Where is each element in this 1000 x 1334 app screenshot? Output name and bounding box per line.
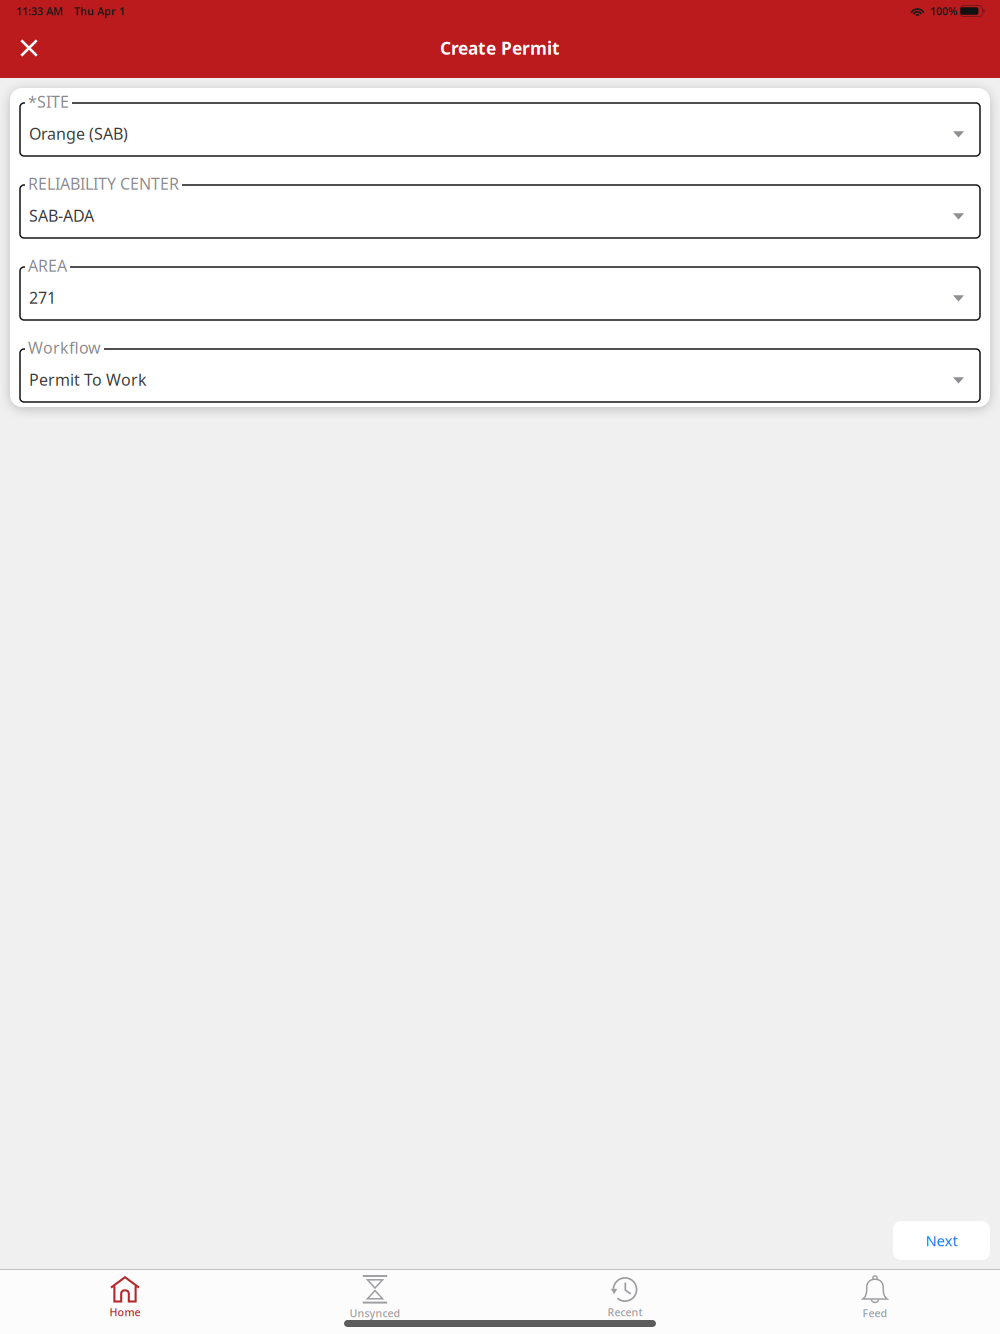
button[interactable]: Next: [893, 1221, 990, 1260]
staticText: Create Permit: [440, 36, 560, 59]
staticText: Orange (SAB): [29, 123, 128, 144]
button[interactable]: Recent: [500, 1276, 750, 1319]
button[interactable]: 271: [20, 260, 980, 320]
button[interactable]: Feed: [750, 1275, 1000, 1320]
staticText: Home: [109, 1305, 140, 1319]
staticText: Unsynced: [349, 1306, 400, 1320]
staticText: Next: [925, 1231, 957, 1250]
button[interactable]: SAB-ADA: [20, 178, 980, 238]
staticText: Permit To Work: [29, 369, 147, 390]
staticText: RELIABILITY CENTER: [28, 173, 179, 194]
staticText: AREA: [28, 255, 67, 276]
staticText: *SITE: [28, 91, 69, 112]
button[interactable]: Close: [7, 26, 51, 70]
button[interactable]: Permit To Work: [20, 342, 980, 402]
button[interactable]: Home: [0, 1276, 250, 1319]
button[interactable]: Unsynced: [250, 1275, 500, 1320]
staticText: Feed: [862, 1306, 887, 1320]
staticText: SAB-ADA: [29, 205, 94, 226]
staticText: 11:33 AM: [16, 4, 63, 18]
staticText: 100%: [930, 4, 957, 18]
button[interactable]: Orange (SAB): [20, 96, 980, 156]
staticText: Recent: [607, 1305, 642, 1319]
staticText: 271: [29, 287, 56, 308]
staticText: Workflow: [28, 337, 101, 358]
staticText: Thu Apr 1: [74, 4, 125, 18]
